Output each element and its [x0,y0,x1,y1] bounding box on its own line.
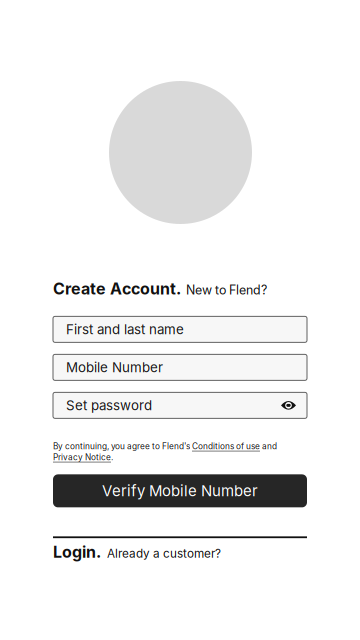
button[interactable]: Conditions of use [192,441,260,451]
staticText: and [260,441,277,451]
staticText: By continuing, you agree to Flend's [53,441,192,451]
staticText: Create Account. [53,279,181,298]
staticText: Privacy Notice [53,452,111,462]
staticText: . [111,452,113,462]
staticText: Mobile Number [66,359,163,375]
staticText: Login. [53,542,101,562]
button[interactable]: Login. [53,542,221,562]
button[interactable]: Verify Mobile Number [53,474,307,507]
staticText: New to Flend? [186,282,267,297]
button[interactable]: First and last name [53,315,307,343]
staticText: Verify Mobile Number [102,482,258,500]
staticText: First and last name [66,321,184,337]
staticText: Already a customer? [107,546,221,560]
button[interactable]: Mobile Number [53,353,307,381]
staticText: Set password [66,397,152,413]
button[interactable]: Show password [281,398,296,412]
button[interactable]: Privacy Notice [53,452,111,462]
staticText: Conditions of use [192,441,260,451]
button[interactable]: Set password [53,391,307,419]
